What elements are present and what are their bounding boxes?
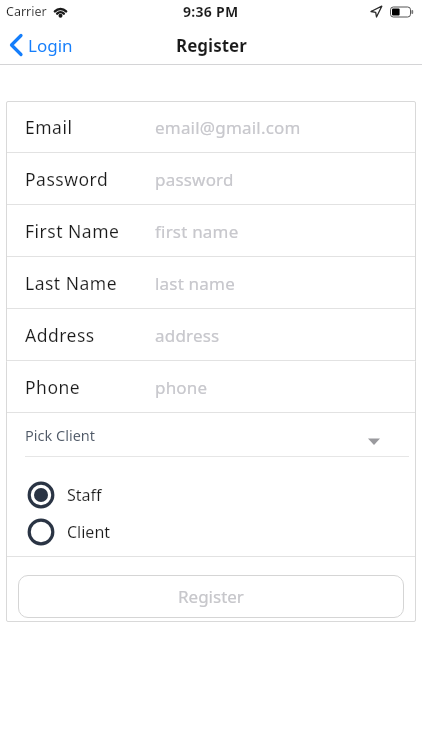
staticText: Staff bbox=[67, 484, 102, 506]
staticText: first name bbox=[155, 220, 239, 243]
staticText: Password bbox=[25, 167, 109, 191]
button[interactable]: Password bbox=[6, 153, 416, 205]
button[interactable]: Pick Client bbox=[6, 413, 416, 457]
button[interactable]: Phone bbox=[6, 361, 416, 413]
button[interactable]: Client bbox=[28, 513, 416, 550]
staticText: Login bbox=[28, 34, 73, 57]
button[interactable]: Staff bbox=[28, 476, 416, 513]
staticText: First Name bbox=[25, 219, 120, 243]
staticText: address bbox=[155, 324, 220, 347]
staticText: Address bbox=[25, 323, 95, 347]
staticText: Pick Client bbox=[25, 425, 96, 445]
staticText: Last Name bbox=[25, 271, 118, 295]
button[interactable]: Login bbox=[9, 33, 73, 57]
staticText: Email bbox=[25, 115, 73, 139]
button[interactable]: Email bbox=[6, 101, 416, 153]
staticText: email@gmail.com bbox=[155, 116, 301, 139]
staticText: 9:36 PM bbox=[183, 2, 239, 21]
staticText: Register bbox=[176, 34, 247, 57]
staticText: password bbox=[155, 168, 234, 191]
staticText: last name bbox=[155, 272, 235, 295]
button[interactable]: Register bbox=[18, 575, 404, 618]
button[interactable]: Last Name bbox=[6, 257, 416, 309]
staticText: Phone bbox=[25, 375, 81, 399]
staticText: Client bbox=[67, 521, 111, 543]
button[interactable]: Address bbox=[6, 309, 416, 361]
staticText: Carrier bbox=[6, 3, 47, 20]
staticText: phone bbox=[155, 376, 208, 399]
staticText: Register bbox=[178, 585, 244, 608]
button[interactable]: First Name bbox=[6, 205, 416, 257]
